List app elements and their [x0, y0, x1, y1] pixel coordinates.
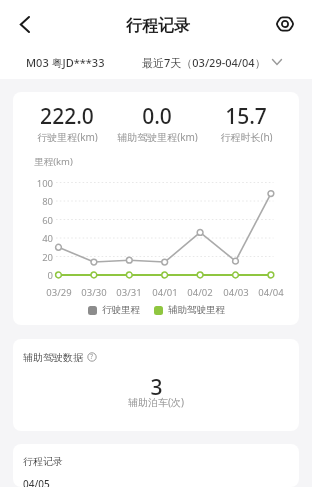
staticText: 行程记录	[23, 455, 63, 468]
staticText: 行程时长(h)	[220, 130, 273, 142]
staticText: 04/01	[152, 286, 178, 299]
button[interactable]: M03 粤JD***33	[14, 47, 105, 77]
staticText: 行驶里程	[102, 304, 140, 316]
button[interactable]	[271, 10, 299, 38]
button[interactable]: 辅助驾驶数据	[13, 339, 299, 431]
button[interactable]: 最近7天（03/29-04/04）	[142, 47, 282, 77]
staticText: 3	[150, 373, 163, 399]
button[interactable]	[10, 10, 38, 38]
staticText: 最近7天（03/29-04/04）	[142, 55, 266, 70]
staticText: 0.0	[142, 102, 172, 131]
staticText: 100	[36, 177, 53, 190]
staticText: 04/05	[23, 477, 50, 487]
staticText: 04/03	[223, 286, 249, 299]
staticText: 03/31	[116, 286, 142, 299]
staticText: 40	[42, 232, 53, 245]
staticText: 60	[42, 214, 53, 227]
staticText: 里程(km)	[34, 155, 73, 168]
staticText: M03 粤JD***33	[26, 55, 105, 70]
staticText: 辅助驾驶里程(km)	[117, 130, 198, 142]
staticText: 辅助驾驶里程	[168, 304, 225, 316]
staticText: 222.0	[40, 102, 94, 131]
staticText: 04/02	[187, 286, 213, 299]
staticText: 04/04	[258, 286, 284, 299]
staticText: ?	[90, 352, 94, 362]
staticText: 行驶里程(km)	[37, 130, 98, 142]
staticText: 15.7	[225, 102, 267, 131]
staticText: 20	[42, 251, 53, 264]
staticText: 80	[42, 195, 53, 208]
staticText: 0	[47, 269, 53, 282]
staticText: 行程记录	[126, 16, 190, 36]
staticText: 辅助驾驶数据	[23, 351, 83, 364]
staticText: 辅助泊车(次)	[128, 395, 184, 409]
staticText: 03/29	[46, 286, 72, 299]
staticText: 03/30	[81, 286, 107, 299]
button[interactable]: 行程记录	[13, 444, 299, 487]
